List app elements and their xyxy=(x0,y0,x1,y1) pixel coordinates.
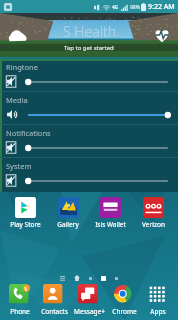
other: Play Store xyxy=(15,197,36,218)
button[interactable]: Ringtone xyxy=(0,59,178,91)
other: Ringtone muted xyxy=(6,75,19,88)
other: Message+ xyxy=(78,284,100,306)
button[interactable]: Play Store xyxy=(4,196,46,230)
button[interactable]: Isis Wallet xyxy=(89,196,131,230)
other: Contacts xyxy=(43,284,65,306)
button[interactable]: Notifications xyxy=(0,125,178,157)
staticText: Apps xyxy=(150,307,166,316)
staticText: Ringtone xyxy=(6,62,38,72)
staticText: Play Store xyxy=(10,220,41,229)
staticText: Chrome xyxy=(112,307,137,316)
button[interactable]: Phone xyxy=(3,284,37,316)
other: Steps xyxy=(6,24,28,46)
staticText: Contacts xyxy=(41,307,68,316)
staticText: Gallery xyxy=(57,220,79,229)
other: Notifications muted xyxy=(6,141,19,154)
other: Home page xyxy=(74,275,80,281)
button[interactable]: Gallery xyxy=(47,196,89,230)
other: Heart rate xyxy=(152,25,172,45)
staticText: 1 xyxy=(24,285,28,292)
button[interactable]: System xyxy=(0,158,178,190)
other: Verizon xyxy=(143,197,164,218)
other: Gallery xyxy=(58,197,79,218)
staticText: Notifications xyxy=(6,128,51,138)
staticText: Isis Wallet xyxy=(95,220,126,229)
button[interactable]: Message+ xyxy=(72,284,106,316)
other: Chrome xyxy=(113,284,135,306)
staticText: 4G xyxy=(112,4,119,11)
other: Page list xyxy=(60,276,65,281)
staticText: Message+ xyxy=(74,307,105,316)
button[interactable]: Apps xyxy=(141,284,175,316)
staticText: Verizon xyxy=(142,220,165,229)
staticText: Phone xyxy=(10,307,30,316)
staticText: 98% xyxy=(130,4,140,11)
staticText: Media xyxy=(6,95,28,105)
staticText: S Health xyxy=(63,22,116,41)
button[interactable]: Contacts xyxy=(37,284,71,316)
other: Apps xyxy=(147,284,169,306)
staticText: Tap to get started xyxy=(64,44,114,52)
button[interactable]: S Health xyxy=(0,13,178,57)
staticText: 9:22 AM xyxy=(148,2,175,12)
button[interactable]: Media xyxy=(0,92,178,124)
other: Media volume xyxy=(6,108,19,121)
button[interactable]: Chrome xyxy=(107,284,141,316)
other: Isis Wallet xyxy=(100,197,121,218)
other: Phone xyxy=(9,284,31,306)
staticText: System xyxy=(6,161,32,171)
button[interactable]: Verizon xyxy=(132,196,174,230)
other: System muted xyxy=(6,174,19,187)
